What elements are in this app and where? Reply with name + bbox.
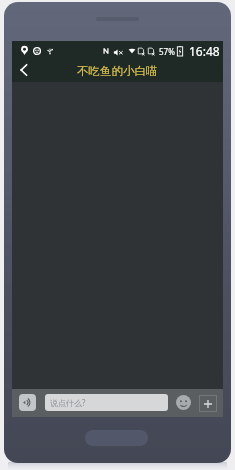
- staticText: 说点什么?: [50, 397, 86, 408]
- button[interactable]: Emoji: [174, 393, 193, 412]
- button[interactable]: Voice input: [19, 394, 36, 411]
- staticText: 57%: [159, 46, 175, 57]
- button[interactable]: Add: [199, 395, 217, 412]
- button[interactable]: Home: [85, 430, 148, 446]
- staticText: 16:48: [189, 43, 220, 59]
- button[interactable]: 说点什么?: [45, 394, 168, 411]
- button[interactable]: Back: [12, 58, 36, 82]
- staticText: 不吃鱼的小白喵: [77, 64, 158, 78]
